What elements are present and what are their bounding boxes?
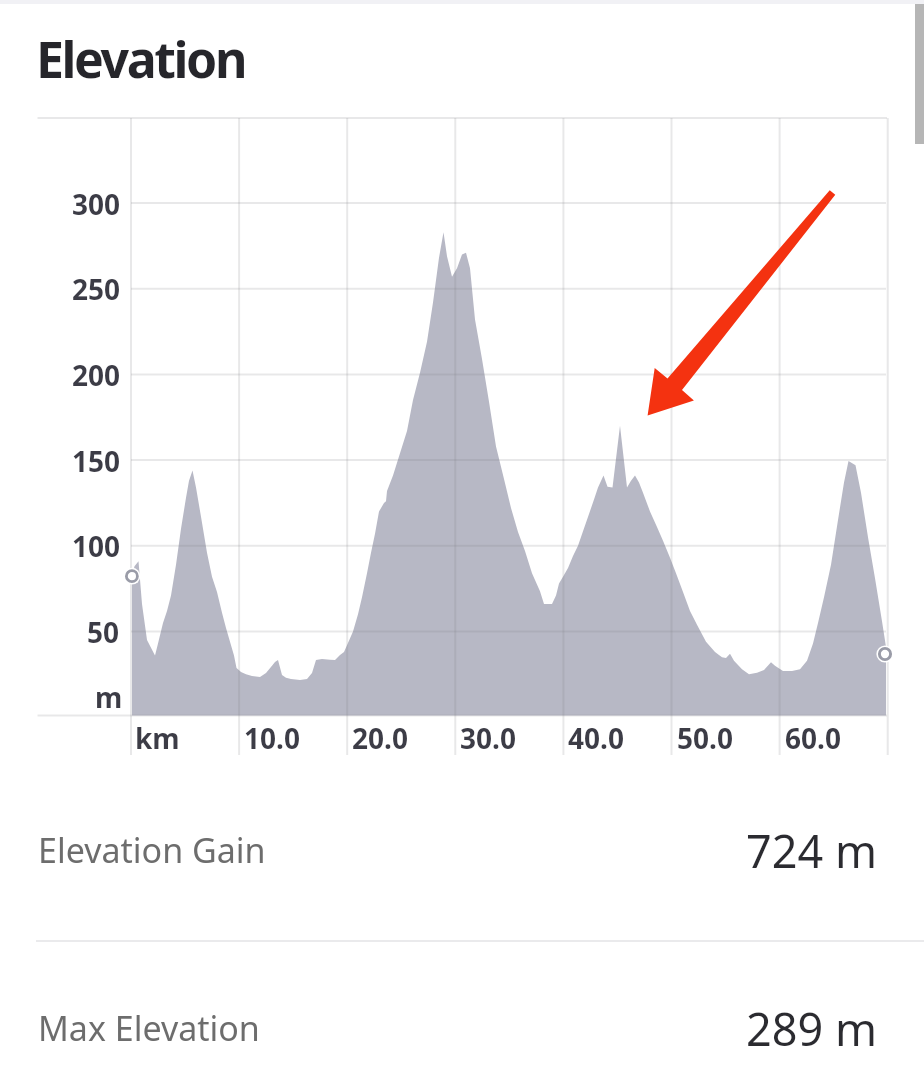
staticText: 40.0: [568, 719, 624, 757]
other: Elevation profile chart: [0, 0, 924, 1080]
staticText: Max Elevation: [38, 1005, 260, 1051]
staticText: Elevation Gain: [38, 827, 266, 873]
staticText: 20.0: [352, 719, 408, 757]
staticText: 300: [72, 185, 121, 223]
staticText: 10.0: [244, 719, 300, 757]
staticText: 289 m: [746, 998, 877, 1059]
button[interactable]: Elevation Gain: [0, 760, 924, 940]
staticText: 50: [87, 613, 120, 651]
button[interactable]: Max Elevation: [0, 942, 924, 1080]
staticText: 200: [72, 356, 121, 394]
staticText: 60.0: [785, 719, 841, 757]
staticText: 724 m: [746, 820, 877, 881]
staticText: 50.0: [677, 719, 733, 757]
staticText: 150: [72, 442, 121, 480]
staticText: 250: [72, 270, 121, 308]
staticText: Elevation: [36, 25, 246, 93]
staticText: 100: [72, 527, 121, 565]
staticText: km: [135, 719, 180, 757]
staticText: 30.0: [460, 719, 516, 757]
staticText: m: [95, 678, 123, 716]
